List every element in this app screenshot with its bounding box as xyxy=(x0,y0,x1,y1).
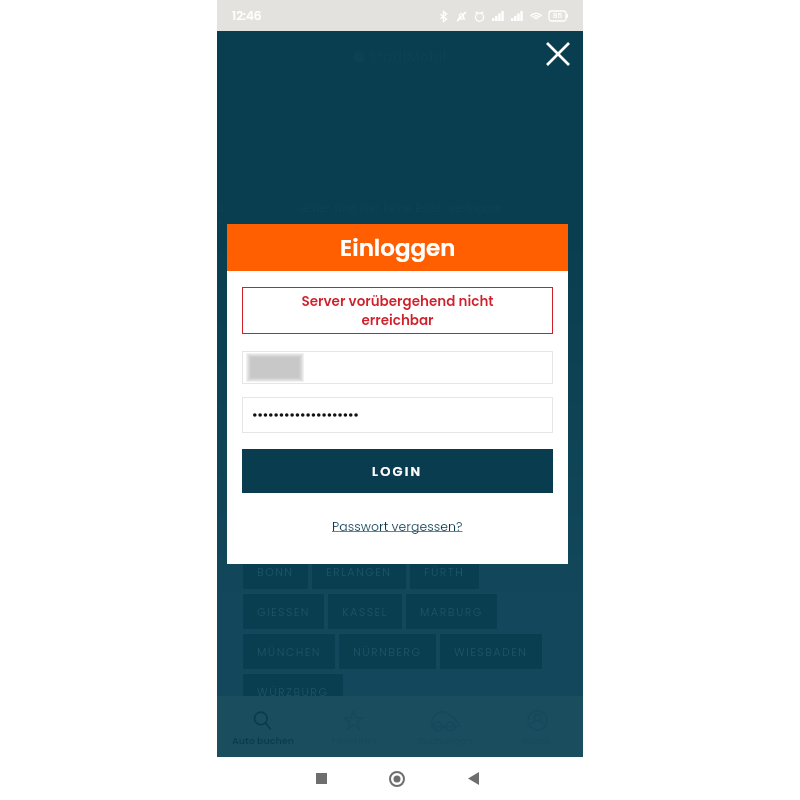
button[interactable]: Passwort vergessen? xyxy=(328,516,467,537)
staticText: NÜRNBERG xyxy=(353,644,422,659)
button[interactable]: GIESSEN xyxy=(243,594,324,629)
staticText: KASSEL xyxy=(342,604,388,619)
button[interactable] xyxy=(242,351,553,384)
staticText: 12:46 xyxy=(232,7,262,24)
button[interactable]: ERLANGEN xyxy=(312,554,406,589)
button[interactable]: WÜRZBURG xyxy=(243,674,343,709)
button[interactable]: WIESBADEN xyxy=(440,634,542,669)
staticText: WÜRZBURG xyxy=(257,684,329,699)
button[interactable]: FÜRTH xyxy=(410,554,479,589)
button[interactable]: KASSEL xyxy=(328,594,402,629)
button[interactable]: NÜRNBERG xyxy=(339,634,436,669)
button[interactable]: LOGIN xyxy=(242,449,553,493)
staticText: LOGIN xyxy=(372,462,423,480)
staticText: ERLANGEN xyxy=(326,564,392,579)
button[interactable]: MARBURG xyxy=(406,594,497,629)
staticText: GIESSEN xyxy=(257,604,310,619)
staticText: Server vorübergehend nicht erreichbar xyxy=(284,292,511,330)
staticText: Einloggen xyxy=(340,232,456,264)
button[interactable]: Back xyxy=(435,757,511,800)
staticText: FÜRTH xyxy=(424,564,465,579)
staticText: MÜNCHEN xyxy=(257,644,321,659)
button[interactable]: Home xyxy=(359,757,435,800)
staticText: Auto buchen xyxy=(232,734,294,747)
staticText: BONN xyxy=(257,564,294,579)
button[interactable]: Recents xyxy=(283,757,359,800)
button[interactable] xyxy=(242,397,553,433)
staticText: WIESBADEN xyxy=(454,644,528,659)
staticText: 85 xyxy=(553,11,562,21)
button[interactable]: Schließen xyxy=(538,34,578,74)
button[interactable]: MÜNCHEN xyxy=(243,634,335,669)
button[interactable]: Auto buchen xyxy=(217,710,308,747)
staticText: MARBURG xyxy=(420,604,483,619)
button[interactable]: BONN xyxy=(243,554,308,589)
